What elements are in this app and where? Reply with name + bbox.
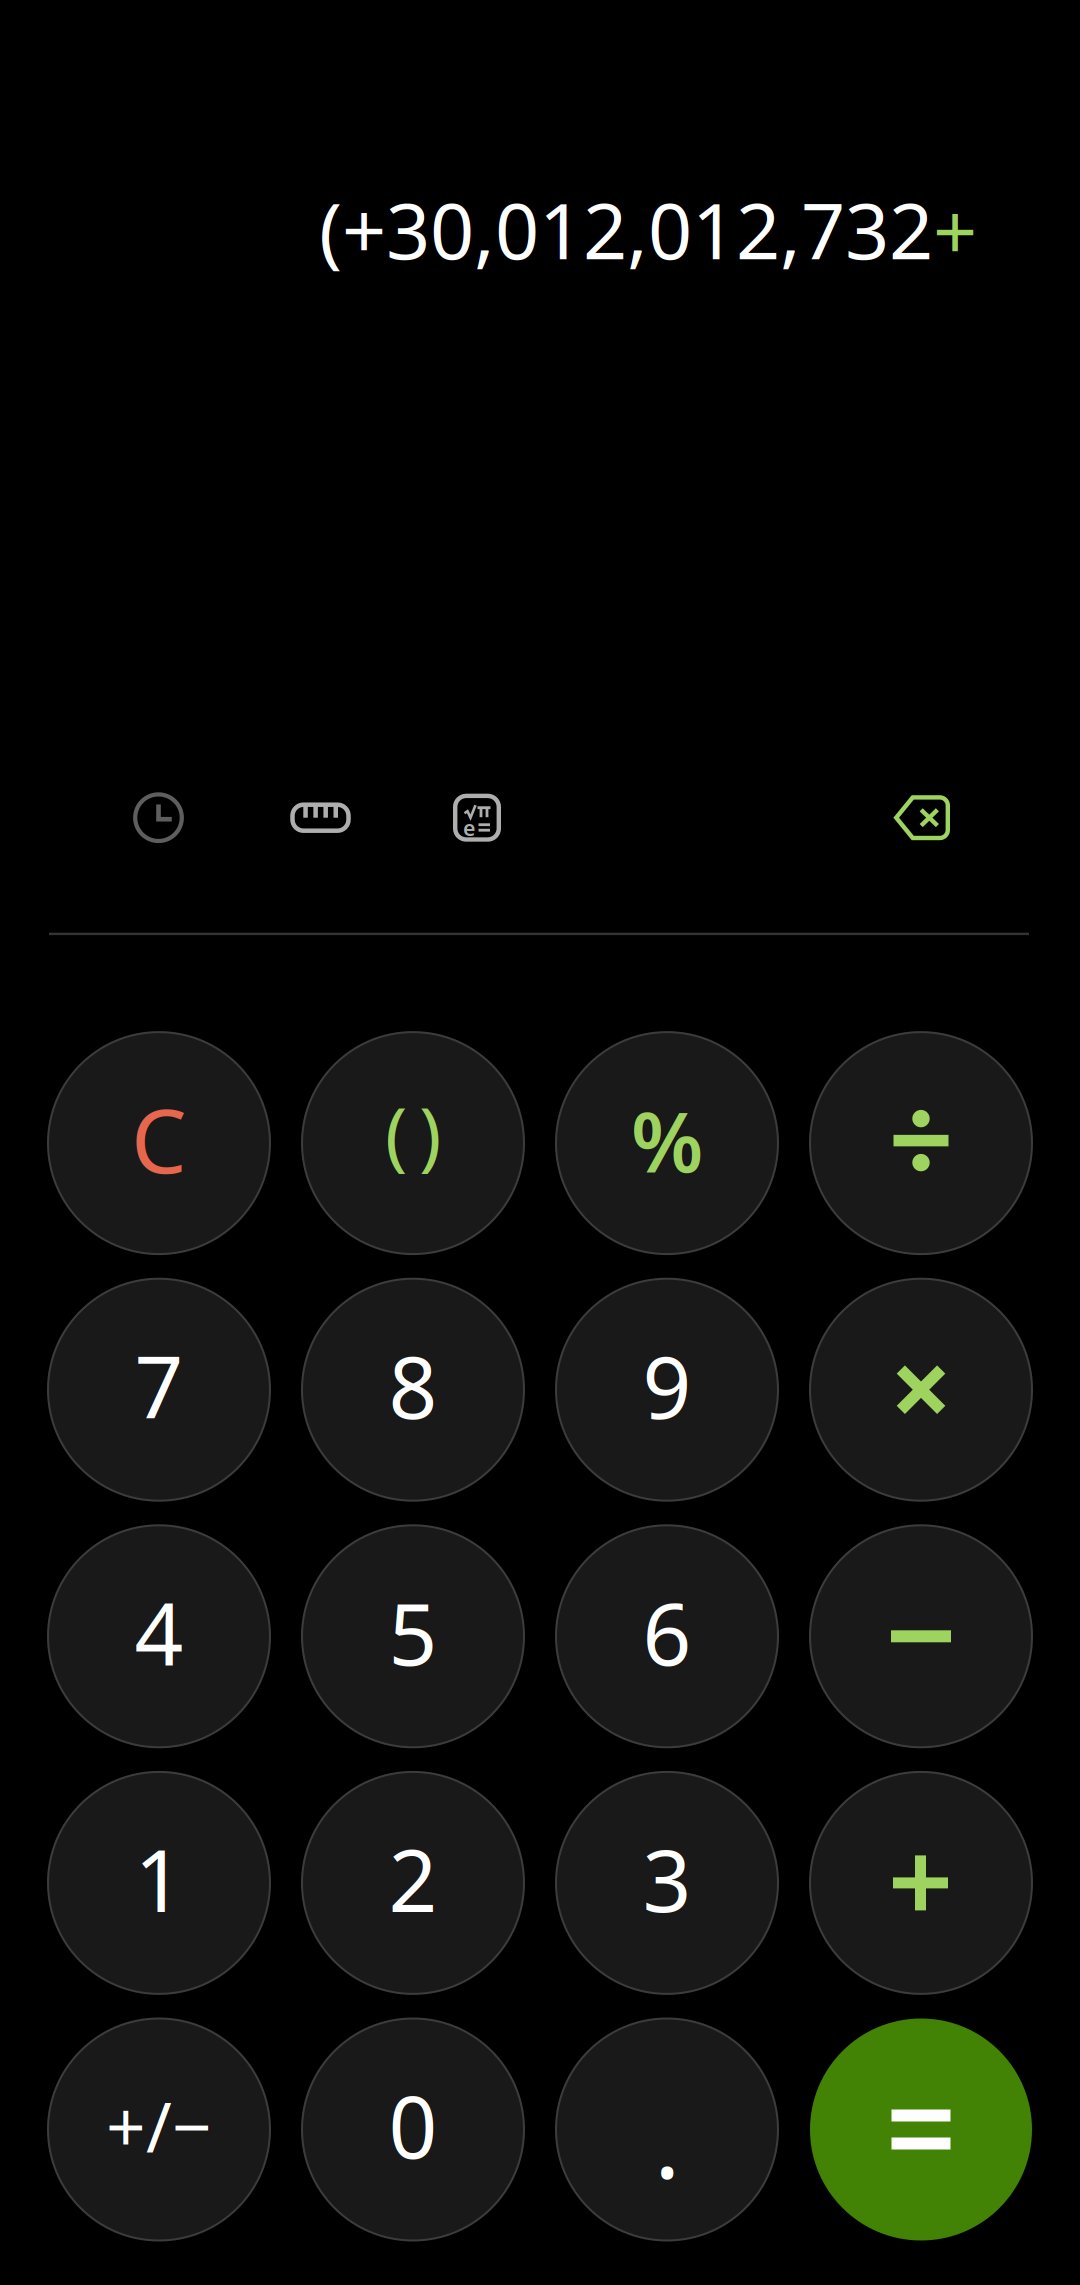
staticText: 6 xyxy=(642,1576,691,1689)
button[interactable]: 4 xyxy=(48,1525,270,1747)
staticText: 5 xyxy=(388,1576,437,1689)
button[interactable]: Scientific functions xyxy=(453,794,501,842)
staticText: % xyxy=(631,1085,703,1195)
button[interactable]: Unit converter xyxy=(290,802,351,833)
button[interactable]: 2 xyxy=(302,1772,524,1994)
button[interactable] xyxy=(810,1032,1032,1254)
button[interactable]: +/− xyxy=(48,2018,270,2240)
button[interactable]: 1 xyxy=(48,1772,270,1994)
button[interactable]: 5 xyxy=(302,1525,524,1747)
button[interactable]: % xyxy=(556,1032,778,1254)
button[interactable] xyxy=(810,1525,1032,1747)
button[interactable]: 0 xyxy=(302,2018,524,2240)
staticText: ( ) xyxy=(385,1083,441,1183)
staticText: (+30,012,012,732 xyxy=(319,178,933,281)
staticText: 9 xyxy=(642,1329,691,1442)
staticText: e xyxy=(463,813,475,842)
button[interactable]: . xyxy=(556,2018,778,2240)
button[interactable]: History xyxy=(133,792,184,843)
staticText: C xyxy=(131,1081,187,1198)
staticText: 0 xyxy=(388,2069,437,2182)
staticText: 4 xyxy=(134,1576,183,1689)
staticText: + xyxy=(933,179,977,282)
staticText: . xyxy=(654,2075,680,2206)
staticText: 3 xyxy=(642,1822,691,1935)
button[interactable]: 9 xyxy=(556,1279,778,1501)
button[interactable]: 8 xyxy=(302,1279,524,1501)
button[interactable]: 7 xyxy=(48,1279,270,1501)
staticText: 2 xyxy=(388,1822,437,1935)
staticText: 7 xyxy=(134,1329,183,1442)
button[interactable]: ( ) xyxy=(302,1032,524,1254)
button[interactable] xyxy=(810,2018,1032,2240)
button[interactable]: 3 xyxy=(556,1772,778,1994)
button[interactable]: Delete xyxy=(894,795,950,840)
staticText: 8 xyxy=(388,1329,437,1442)
button[interactable] xyxy=(810,1279,1032,1501)
staticText: 1 xyxy=(134,1822,183,1935)
button[interactable]: 6 xyxy=(556,1525,778,1747)
staticText: +/− xyxy=(106,2079,212,2172)
button[interactable] xyxy=(810,1772,1032,1994)
button[interactable]: C xyxy=(48,1032,270,1254)
